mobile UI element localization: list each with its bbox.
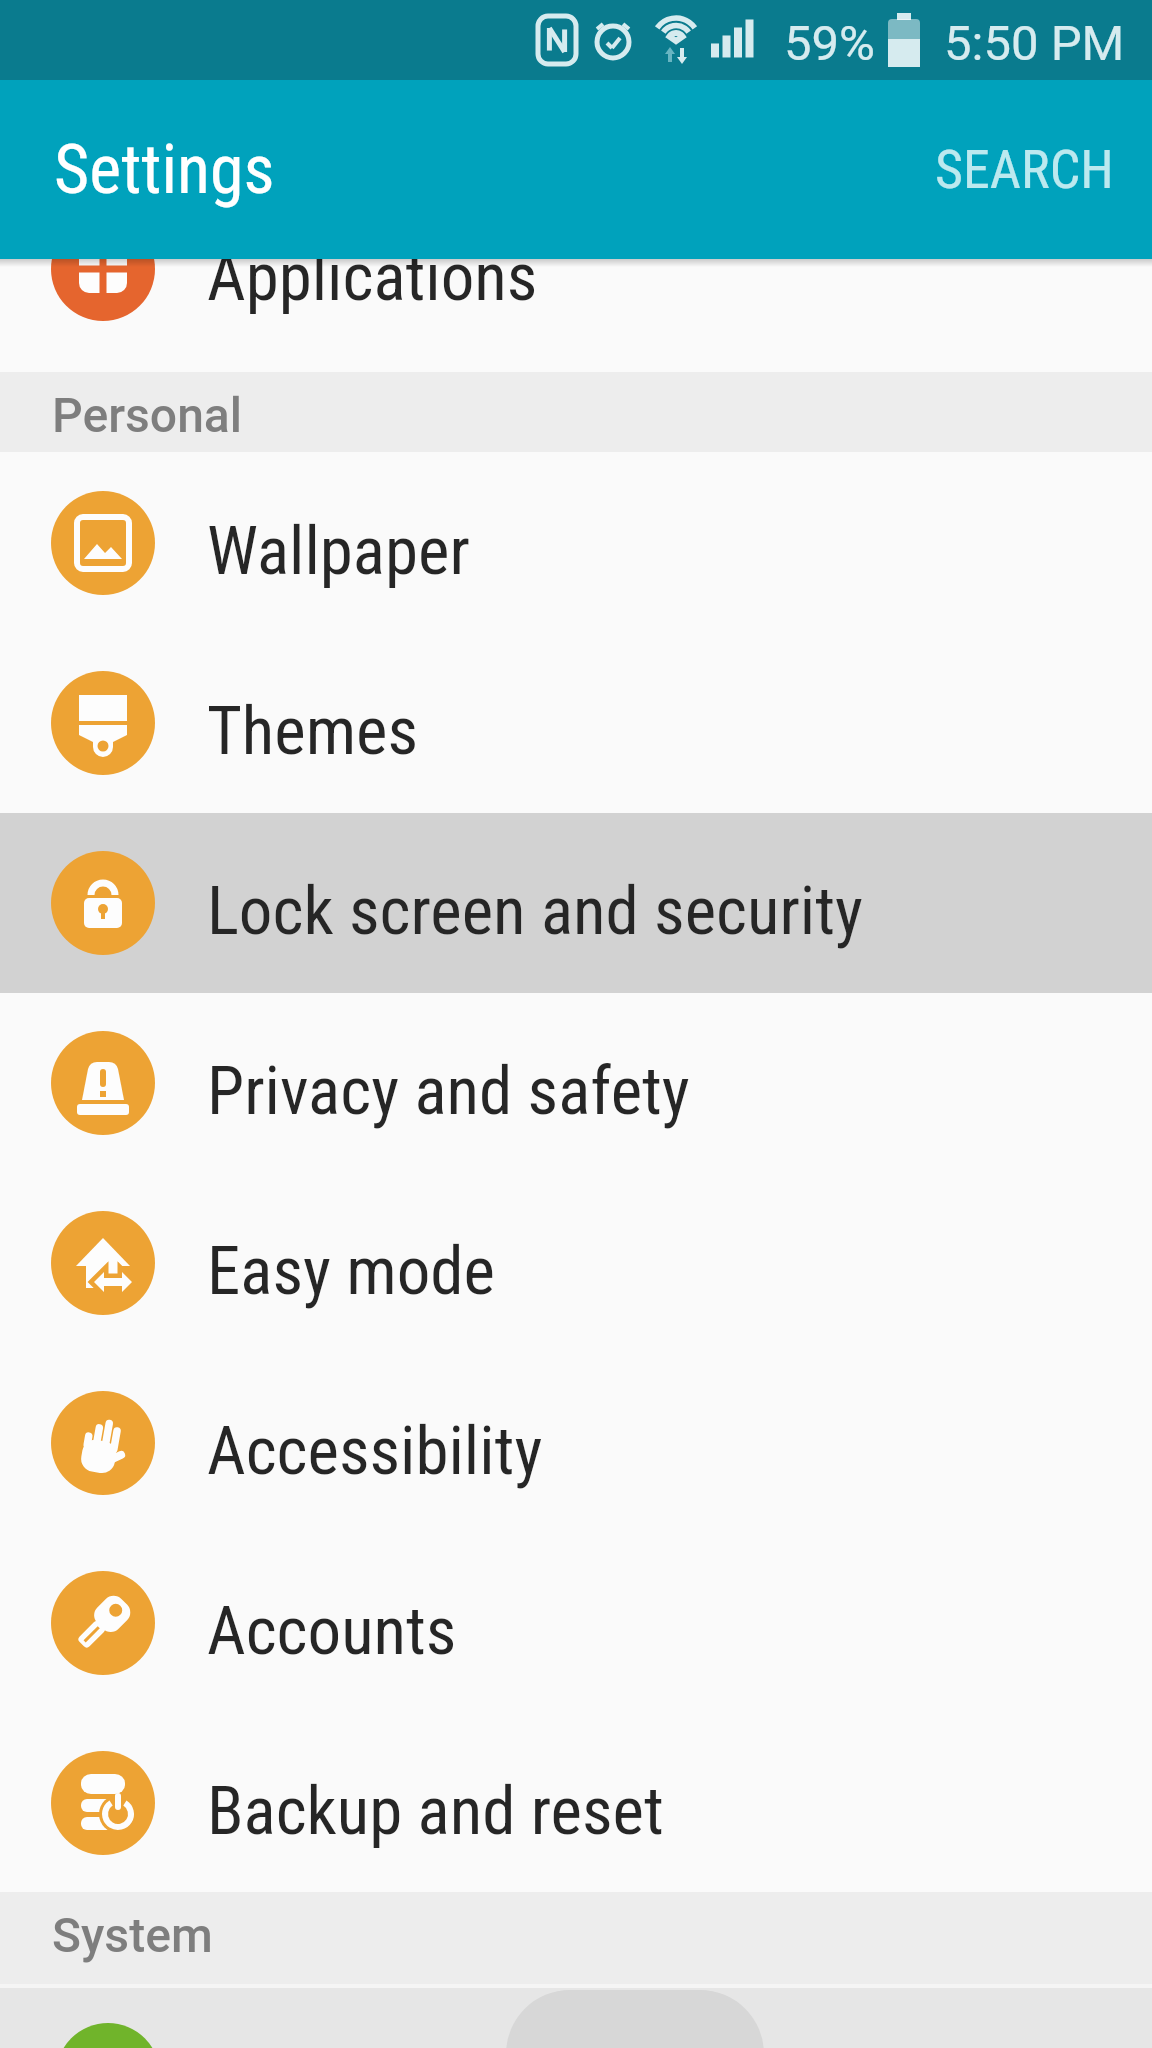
button[interactable]: Accounts [0, 1533, 1152, 1713]
staticText: Easy mode [207, 1232, 495, 1311]
button[interactable]: Privacy and safety [0, 993, 1152, 1173]
staticText: Applications [207, 238, 538, 317]
button[interactable]: SEARCH [935, 138, 1114, 201]
staticText: Privacy and safety [207, 1052, 690, 1131]
staticText: Accessibility [207, 1412, 543, 1491]
staticText: 59% [784, 15, 875, 72]
staticText: Settings [54, 130, 275, 210]
button[interactable]: Accessibility [0, 1353, 1152, 1533]
staticText: Personal [52, 387, 243, 443]
button[interactable]: Lock screen and security [0, 813, 1152, 993]
button[interactable]: Themes [0, 633, 1152, 813]
staticText: System [52, 1907, 213, 1963]
staticText: Backup and reset [207, 1772, 664, 1851]
button[interactable]: Wallpaper [0, 453, 1152, 633]
staticText: 5:50 PM [944, 15, 1125, 72]
staticText: Themes [207, 692, 419, 771]
button[interactable]: Backup and reset [0, 1713, 1152, 1893]
button[interactable]: Easy mode [0, 1173, 1152, 1353]
staticText: Accounts [207, 1592, 457, 1671]
staticText: Lock screen and security [207, 872, 863, 951]
staticText: Wallpaper [207, 512, 470, 591]
button[interactable]: Applications [0, 179, 1152, 359]
staticText: SEARCH [935, 138, 1114, 201]
